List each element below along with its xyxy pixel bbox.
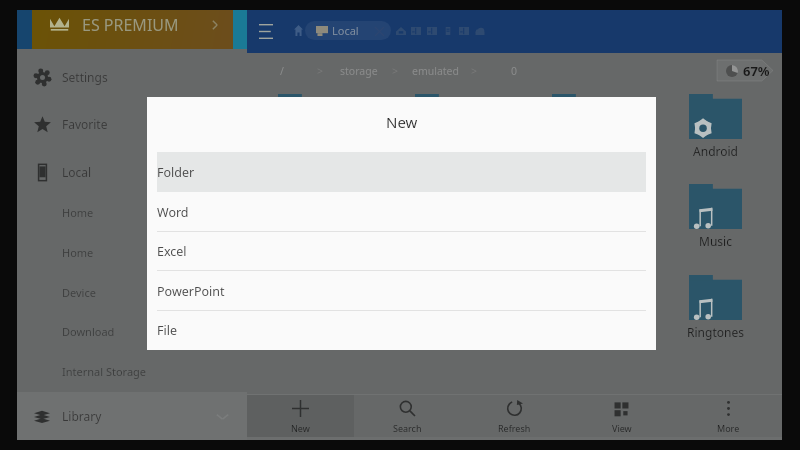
button[interactable]: Apps: [456, 23, 472, 39]
button[interactable]: Android: [664, 94, 767, 159]
button[interactable]: View: [568, 395, 675, 437]
button[interactable]: Home: [17, 192, 247, 232]
button[interactable]: More: [675, 395, 782, 437]
button[interactable]: Notes: [440, 23, 456, 39]
staticText: File: [157, 322, 177, 339]
staticText: New: [291, 422, 310, 434]
button[interactable]: storage: [340, 64, 378, 78]
button[interactable]: emulated: [412, 64, 459, 78]
button[interactable]: 67%: [717, 60, 773, 81]
staticText: Word: [157, 204, 189, 221]
button[interactable]: SD card: [393, 23, 409, 39]
button[interactable]: Folder: [415, 94, 468, 103]
staticText: Favorite: [62, 116, 108, 132]
staticText: 67%: [743, 62, 770, 80]
button[interactable]: Favorite: [17, 101, 247, 147]
staticText: Settings: [62, 69, 108, 85]
staticText: Home: [62, 205, 94, 220]
button[interactable]: Ringtones: [664, 275, 767, 340]
button[interactable]: Word: [157, 192, 646, 232]
button[interactable]: Device: [17, 272, 247, 312]
staticText: >: [317, 64, 324, 78]
staticText: Local: [332, 23, 359, 38]
staticText: PowerPoint: [157, 283, 225, 300]
staticText: Android: [693, 143, 738, 159]
staticText: Download: [62, 324, 115, 339]
button[interactable]: Home: [286, 18, 310, 42]
button[interactable]: Folder: [278, 94, 331, 103]
button[interactable]: Home: [17, 232, 247, 272]
button[interactable]: Download: [17, 311, 247, 351]
staticText: Search: [393, 422, 422, 434]
button[interactable]: ES PREMIUM: [17, 10, 247, 49]
button[interactable]: Network: [408, 23, 424, 39]
button[interactable]: Cloud: [472, 23, 488, 39]
button[interactable]: /: [280, 64, 284, 78]
staticText: >: [392, 64, 399, 78]
staticText: ES PREMIUM: [82, 14, 179, 36]
staticText: Refresh: [498, 422, 531, 434]
button[interactable]: PowerPoint: [157, 271, 646, 311]
staticText: Library: [62, 408, 102, 424]
button[interactable]: Library: [17, 392, 247, 440]
button[interactable]: File: [157, 310, 646, 350]
button[interactable]: Folder: [552, 94, 605, 103]
staticText: Folder: [157, 164, 195, 181]
button[interactable]: Local: [17, 149, 247, 195]
staticText: Music: [699, 233, 732, 249]
button[interactable]: Refresh: [461, 395, 568, 437]
button[interactable]: New: [247, 395, 354, 437]
button[interactable]: Local: [305, 21, 391, 40]
staticText: Excel: [157, 243, 187, 260]
button[interactable]: Excel: [157, 231, 646, 271]
staticText: Home: [62, 245, 94, 260]
staticText: More: [717, 422, 740, 434]
staticText: View: [612, 422, 632, 434]
button[interactable]: Search: [354, 395, 461, 437]
staticText: Device: [62, 285, 96, 300]
staticText: Internal Storage: [62, 364, 147, 379]
staticText: Local: [62, 164, 92, 180]
button[interactable]: Settings: [17, 54, 247, 100]
button[interactable]: Window: [424, 23, 440, 39]
staticText: New: [386, 112, 418, 132]
button[interactable]: 0: [511, 64, 518, 78]
staticText: >: [471, 64, 478, 78]
button[interactable]: Folder: [157, 152, 646, 192]
button[interactable]: Internal Storage: [17, 351, 247, 391]
button[interactable]: Music: [664, 184, 767, 249]
button[interactable]: Menu: [252, 18, 279, 45]
staticText: Ringtones: [687, 324, 744, 340]
